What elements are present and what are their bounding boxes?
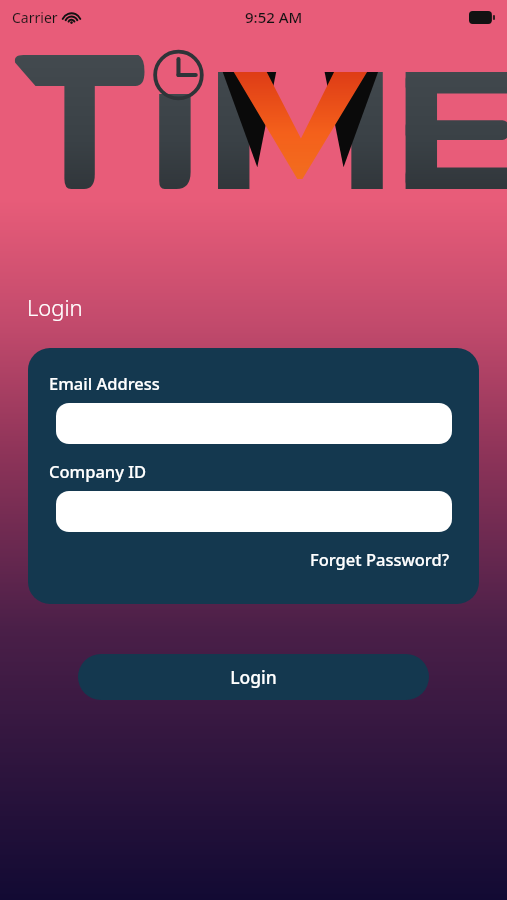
button[interactable]	[56, 403, 452, 444]
staticText: Login	[230, 665, 277, 689]
button[interactable]: Forget Password?	[308, 546, 452, 572]
button[interactable]	[56, 491, 452, 532]
staticText: Email Address	[49, 372, 160, 394]
staticText: Login	[27, 292, 83, 322]
button[interactable]: Login	[78, 654, 429, 700]
staticText: Forget Password?	[310, 548, 450, 570]
staticText: Carrier	[12, 8, 58, 27]
other: Battery full	[469, 11, 495, 24]
other: Wi-Fi signal	[63, 11, 80, 24]
staticText: Company ID	[49, 460, 147, 482]
staticText: 9:52 AM	[245, 7, 303, 27]
